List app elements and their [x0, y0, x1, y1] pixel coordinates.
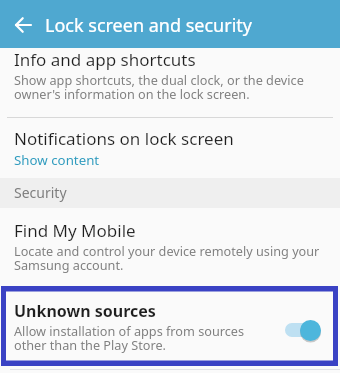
staticText: Allow installation of apps from sources … — [14, 322, 245, 354]
button[interactable] — [285, 319, 321, 341]
staticText: Unknown sources — [14, 300, 156, 322]
staticText: Locate and control your device remotely … — [14, 242, 320, 274]
staticText: Info and app shortcuts — [14, 48, 196, 71]
staticText: Notifications on lock screen — [14, 127, 234, 150]
staticText: Lock screen and security — [45, 13, 252, 38]
button[interactable]: Lock screen and security — [0, 0, 340, 48]
button[interactable]: Find My Mobile — [0, 208, 340, 274]
staticText: Security — [14, 183, 67, 202]
button[interactable] — [0, 0, 45, 48]
staticText: Show content — [14, 151, 100, 169]
staticText: Show app shortcuts, the dual clock, or t… — [14, 71, 304, 103]
button[interactable]: Unknown sources — [1, 286, 338, 366]
staticText: Find My Mobile — [14, 219, 136, 242]
button[interactable]: Notifications on lock screen — [0, 118, 340, 169]
button[interactable]: Info and app shortcuts — [0, 48, 340, 103]
